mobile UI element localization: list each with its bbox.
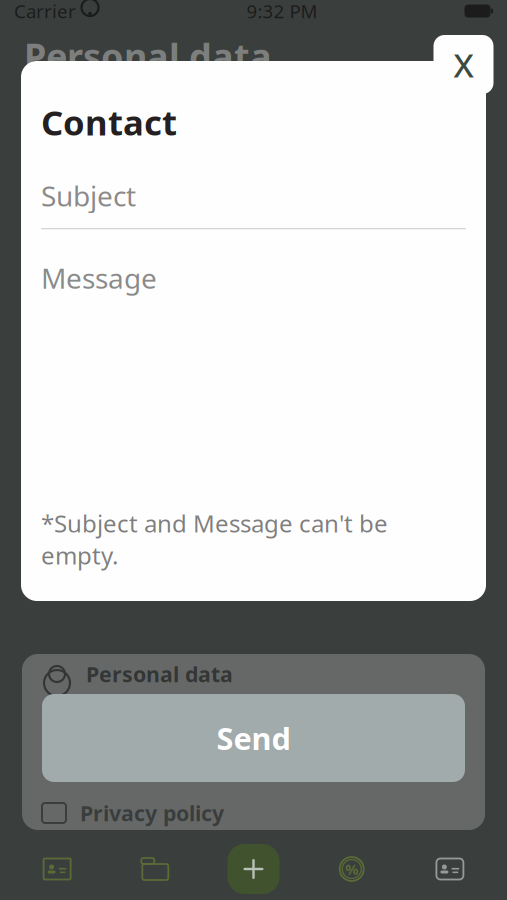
button[interactable]: Offers	[303, 841, 401, 897]
staticText: Privacy policy	[80, 799, 224, 827]
staticText: Message	[41, 259, 157, 296]
button[interactable]: Documents	[106, 841, 204, 897]
button[interactable]: Cards	[8, 841, 106, 897]
staticText: *Subject and Message can't be empty.	[41, 507, 388, 571]
staticText: Carrier	[14, 0, 76, 23]
staticText: Subject	[41, 177, 136, 214]
staticText: X	[453, 42, 473, 87]
staticText: Personal data	[86, 660, 233, 688]
button[interactable]: Add	[223, 841, 283, 897]
staticText: 9:32 PM	[246, 0, 317, 23]
staticText: Contact	[41, 99, 177, 145]
staticText: Send	[216, 718, 290, 758]
button[interactable]: Profile	[401, 841, 499, 897]
staticText: %	[345, 859, 358, 879]
staticText: Personal data	[24, 32, 272, 80]
button[interactable]: Close	[433, 35, 493, 94]
